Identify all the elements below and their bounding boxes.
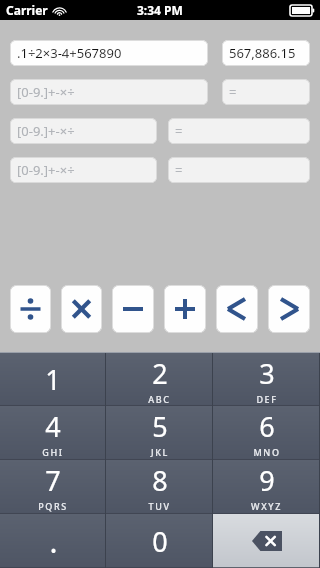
button[interactable]: = [168, 118, 310, 144]
staticText: WXYZ [251, 500, 282, 512]
staticText: JKL [151, 446, 169, 458]
button[interactable]: 0 [106, 514, 213, 568]
staticText: 6 [259, 408, 275, 445]
button[interactable]: [0-9.]+-×÷ [10, 79, 208, 105]
staticText: 1 [45, 361, 61, 398]
staticText: 567,886.15 [229, 44, 296, 62]
staticText: PQRS [38, 500, 68, 512]
button[interactable]: [0-9.]+-×÷ [10, 118, 157, 144]
staticText: 4 [45, 408, 61, 445]
staticText: 3 [259, 355, 275, 392]
staticText: [0-9.]+-×÷ [17, 122, 75, 140]
button[interactable]: Backspace [213, 514, 320, 568]
button[interactable]: = [168, 157, 310, 183]
button[interactable]: 9 [213, 460, 320, 514]
button[interactable]: Next [268, 285, 310, 333]
staticText: 3:34 PM [137, 2, 183, 18]
button[interactable]: [0-9.]+-×÷ [10, 157, 157, 183]
staticText: MNO [253, 446, 281, 458]
staticText: ABC [148, 393, 171, 405]
button[interactable]: Add [164, 285, 206, 333]
button[interactable]: 7 [0, 460, 106, 514]
staticText: 5 [152, 408, 168, 445]
button[interactable]: 567,886.15 [222, 40, 310, 66]
button[interactable]: .1÷2×3-4+567890 [10, 40, 208, 66]
staticText: = [175, 122, 183, 140]
staticText: 0 [152, 523, 168, 560]
staticText: Carrier [6, 2, 48, 18]
button[interactable]: . [0, 514, 106, 568]
staticText: 9 [259, 462, 275, 499]
button[interactable]: 4 [0, 406, 106, 460]
button[interactable]: 8 [106, 460, 213, 514]
button[interactable]: Subtract [112, 285, 154, 333]
button[interactable]: Previous [216, 285, 258, 333]
button[interactable]: 2 [106, 353, 213, 406]
staticText: TUV [148, 500, 171, 512]
staticText: . [49, 521, 58, 562]
staticText: GHI [42, 446, 64, 458]
staticText: 8 [152, 462, 168, 499]
staticText: [0-9.]+-×÷ [17, 161, 75, 179]
button[interactable]: Divide [10, 285, 51, 333]
staticText: = [229, 83, 237, 101]
button[interactable]: = [222, 79, 310, 105]
staticText: [0-9.]+-×÷ [17, 83, 75, 101]
button[interactable]: 1 [0, 353, 106, 406]
button[interactable]: 5 [106, 406, 213, 460]
staticText: 7 [45, 462, 61, 499]
button[interactable]: 6 [213, 406, 320, 460]
staticText: .1÷2×3-4+567890 [17, 44, 122, 62]
button[interactable]: 3 [213, 353, 320, 406]
staticText: 2 [152, 355, 168, 392]
staticText: DEF [256, 393, 278, 405]
button[interactable]: Multiply [61, 285, 102, 333]
staticText: = [175, 161, 183, 179]
